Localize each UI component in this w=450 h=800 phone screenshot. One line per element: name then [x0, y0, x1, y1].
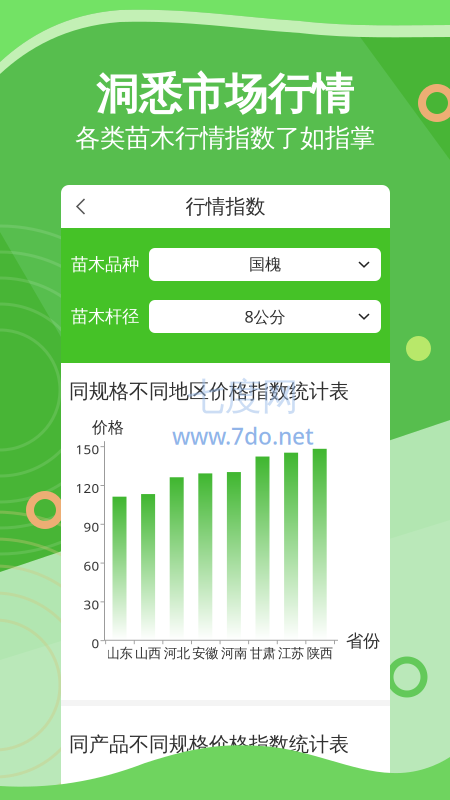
staticText: 同规格不同地区价格指数统计表 — [69, 379, 349, 404]
staticText: 安徽 — [192, 645, 218, 662]
staticText: 30 — [83, 595, 99, 613]
staticText: 河北 — [164, 645, 190, 662]
button[interactable]: 国槐 — [149, 248, 381, 281]
staticText: 国槐 — [249, 255, 281, 274]
staticText: 90 — [83, 518, 99, 535]
staticText: 洞悉市场行情 — [96, 68, 354, 120]
staticText: 苗木杆径 — [71, 306, 139, 327]
staticText: 各类苗木行情指数了如指掌 — [75, 122, 375, 153]
staticText: 山西 — [135, 645, 161, 662]
staticText: 山东 — [106, 645, 132, 662]
staticText: 同产品不同规格价格指数统计表 — [69, 732, 349, 757]
staticText: 120 — [75, 479, 99, 497]
staticText: 价格 — [92, 418, 124, 437]
staticText: 8公分 — [244, 306, 285, 327]
staticText: 苗木品种 — [71, 254, 139, 275]
staticText: www.7do.net — [172, 421, 314, 451]
button[interactable]: Back — [61, 185, 98, 228]
staticText: 省份 — [346, 630, 380, 651]
staticText: 河南 — [221, 645, 247, 662]
staticText: 江苏 — [278, 645, 304, 662]
staticText: 七度网 — [187, 374, 298, 420]
staticText: 0 — [91, 634, 99, 652]
button[interactable]: 8公分 — [149, 300, 381, 333]
staticText: 60 — [83, 557, 99, 574]
staticText: 150 — [75, 440, 99, 458]
staticText: 甘肃 — [249, 645, 275, 662]
staticText: 行情指数 — [185, 194, 265, 219]
staticText: 陕西 — [307, 645, 333, 662]
